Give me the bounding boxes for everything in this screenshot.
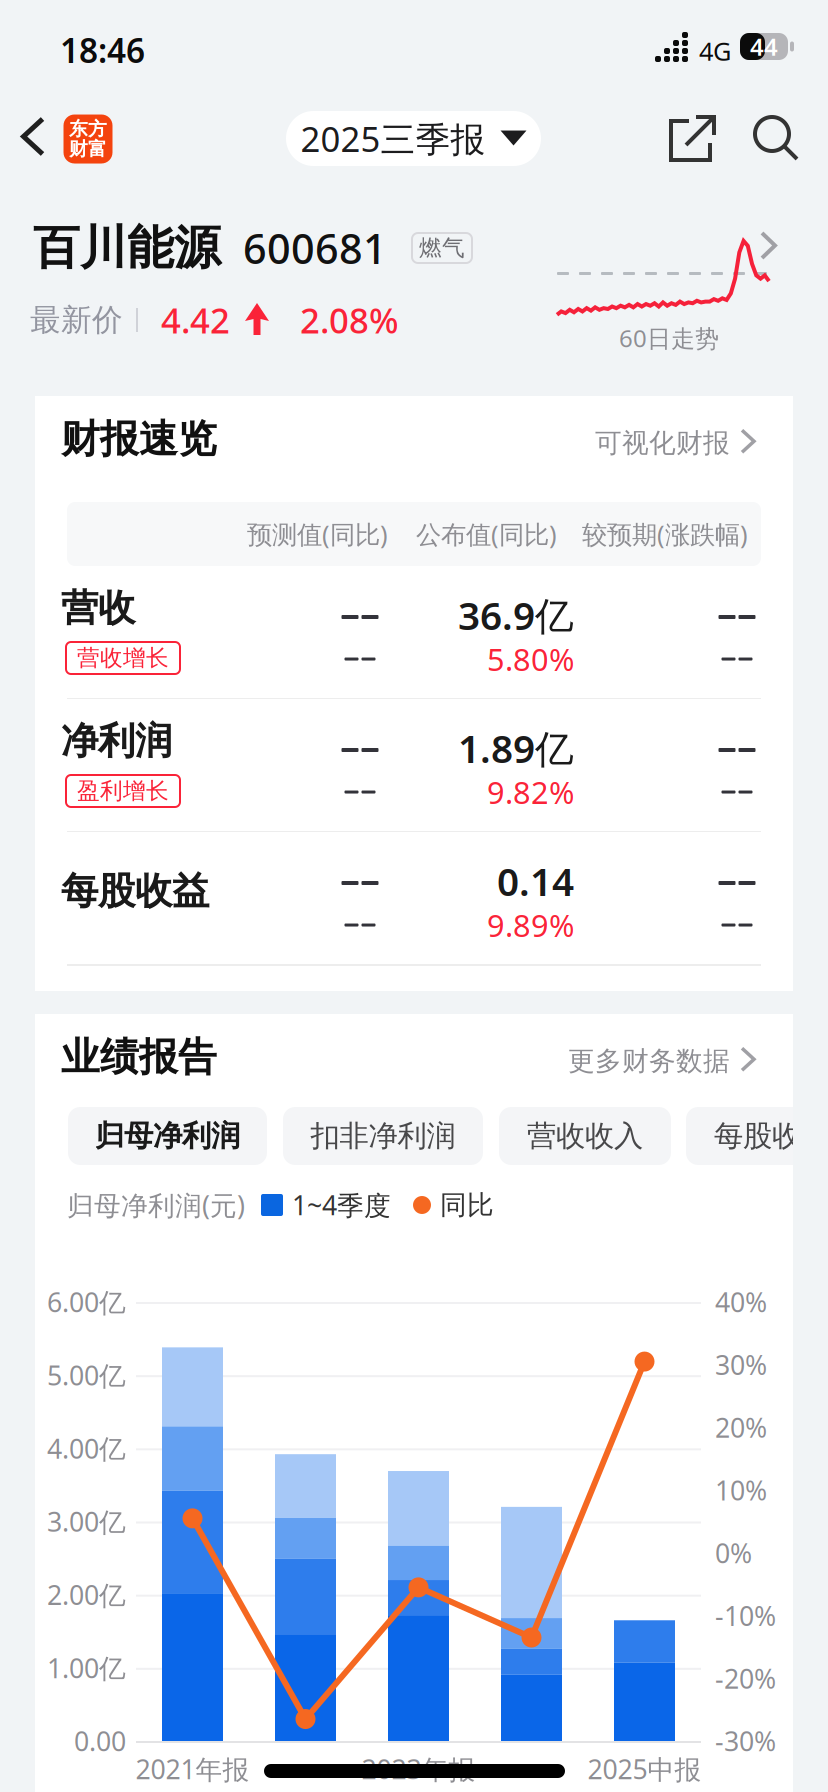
- button[interactable]: 2025三季报: [286, 111, 541, 166]
- staticText: 3.00亿: [47, 1504, 126, 1539]
- staticText: 10%: [715, 1472, 767, 1508]
- staticText: -30%: [715, 1723, 776, 1759]
- button[interactable]: Share: [657, 100, 729, 178]
- staticText: 30%: [715, 1347, 767, 1382]
- staticText: 预测值(同比): [247, 517, 388, 551]
- staticText: 营收: [61, 585, 135, 631]
- staticText: 600681: [243, 221, 387, 275]
- staticText: 1~4季度: [292, 1187, 391, 1223]
- staticText: 营收收入: [527, 1118, 643, 1154]
- button[interactable]: 扣非净利润: [283, 1107, 483, 1165]
- button[interactable]: 可视化财报: [461, 418, 761, 468]
- staticText: 方: [88, 117, 107, 140]
- staticText: 0.00: [74, 1723, 126, 1759]
- staticText: 较预期(涨跌幅): [582, 517, 748, 551]
- button[interactable]: Back: [8, 100, 68, 178]
- staticText: 同比: [440, 1189, 494, 1221]
- staticText: 0%: [715, 1535, 752, 1571]
- staticText: 2023年报: [361, 1751, 475, 1787]
- staticText: 6.00亿: [47, 1284, 126, 1320]
- staticText: 每股收益: [714, 1118, 828, 1154]
- staticText: 财: [69, 137, 88, 160]
- button[interactable]: 更多财务数据: [461, 1036, 761, 1086]
- button[interactable]: 百川能源: [0, 200, 828, 396]
- staticText: 2025中报: [587, 1751, 701, 1787]
- staticText: 东: [69, 117, 88, 140]
- staticText: 每股收益: [61, 868, 209, 914]
- staticText: 2021年报: [135, 1751, 249, 1787]
- staticText: 归母净利润: [95, 1118, 240, 1154]
- button[interactable]: Search: [738, 100, 814, 178]
- button[interactable]: 归母净利润: [68, 1107, 267, 1165]
- staticText: 富: [88, 137, 107, 160]
- staticText: 净利润: [61, 718, 172, 764]
- staticText: 财报速览: [61, 415, 217, 463]
- staticText: 1.89亿: [458, 722, 574, 774]
- staticText: 归母净利润(元): [67, 1187, 245, 1223]
- button[interactable]: 营收收入: [499, 1107, 671, 1165]
- staticText: 营收增长: [77, 644, 169, 672]
- staticText: 扣非净利润: [310, 1118, 455, 1154]
- staticText: 2025三季报: [300, 115, 485, 161]
- staticText: 60日走势: [619, 322, 719, 354]
- staticText: 2.08%: [300, 297, 399, 343]
- staticText: 百川能源: [33, 219, 221, 277]
- staticText: 盈利增长: [77, 777, 169, 805]
- staticText: -10%: [715, 1598, 776, 1633]
- staticText: 44: [750, 31, 778, 62]
- button[interactable]: 东方财富: [58, 100, 118, 178]
- staticText: 4G: [699, 34, 731, 68]
- staticText: 5.00亿: [47, 1357, 126, 1393]
- staticText: 可视化财报: [595, 427, 730, 459]
- staticText: 4.42: [161, 297, 230, 343]
- staticText: 2.00亿: [47, 1577, 126, 1612]
- staticText: 9.89%: [487, 905, 574, 945]
- staticText: 0.14: [497, 855, 574, 907]
- staticText: 9.82%: [487, 772, 574, 812]
- staticText: 36.9亿: [458, 589, 574, 641]
- staticText: 燃气: [419, 234, 465, 262]
- staticText: 5.80%: [487, 639, 574, 679]
- staticText: 1.00亿: [47, 1650, 126, 1685]
- staticText: -20%: [715, 1661, 776, 1696]
- staticText: 更多财务数据: [568, 1045, 730, 1077]
- staticText: 18:46: [60, 28, 145, 72]
- staticText: 最新价: [30, 301, 123, 339]
- staticText: 4.00亿: [47, 1431, 126, 1466]
- staticText: 业绩报告: [61, 1033, 217, 1081]
- button[interactable]: 每股收益: [686, 1107, 793, 1165]
- staticText: 公布值(同比): [416, 517, 557, 551]
- staticText: 40%: [715, 1284, 767, 1320]
- staticText: 20%: [715, 1410, 767, 1445]
